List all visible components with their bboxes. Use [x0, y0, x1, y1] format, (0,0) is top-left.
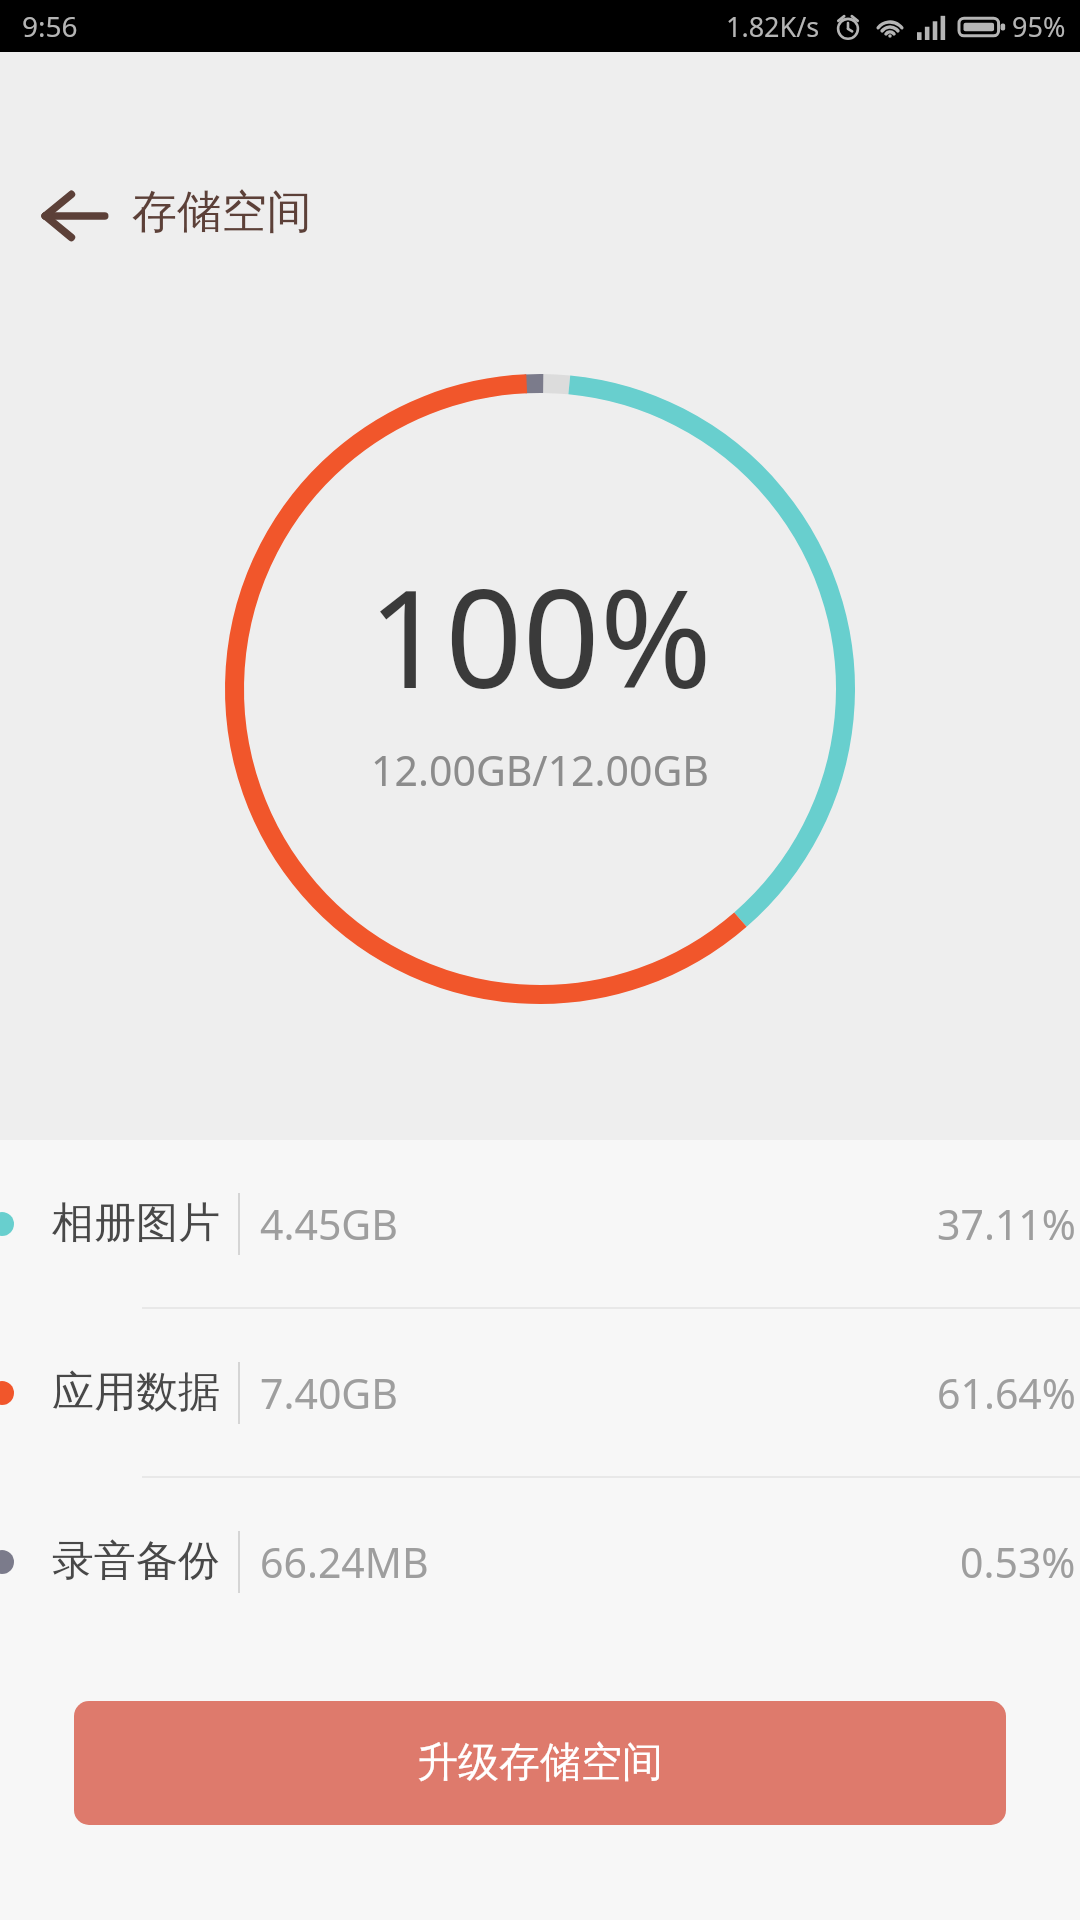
staticText: 37.11%	[937, 1196, 1076, 1252]
other: Back	[42, 189, 106, 237]
button[interactable]: 升级存储空间	[74, 1701, 1006, 1825]
staticText: 存储空间	[132, 184, 312, 241]
staticText: 61.64%	[937, 1365, 1076, 1421]
staticText: 0.53%	[960, 1534, 1076, 1590]
staticText: 1.82K/s	[726, 8, 820, 45]
staticText: 4.45GB	[260, 1196, 398, 1252]
staticText: 7.40GB	[260, 1365, 398, 1421]
button[interactable]: 相册图片	[0, 1140, 1080, 1307]
staticText: 应用数据	[52, 1366, 220, 1419]
staticText: 相册图片	[52, 1197, 220, 1250]
staticText: 9:56	[22, 7, 78, 45]
staticText: 录音备份	[52, 1535, 220, 1588]
staticText: 12.00GB/12.00GB	[371, 742, 709, 798]
staticText: 升级存储空间	[417, 1737, 663, 1789]
button[interactable]: 录音备份	[0, 1478, 1080, 1645]
staticText: 66.24MB	[260, 1534, 429, 1590]
staticText: 100%	[368, 544, 712, 728]
button[interactable]: Back	[34, 172, 320, 253]
staticText: 95%	[1012, 8, 1066, 45]
button[interactable]: 应用数据	[0, 1309, 1080, 1476]
